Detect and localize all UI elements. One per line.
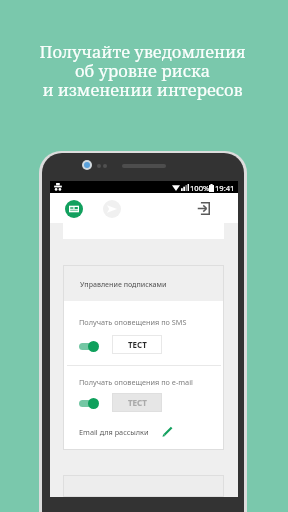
staticText: Получать оповещения по SMS — [79, 317, 187, 327]
button[interactable]: Toggle notifications — [79, 397, 101, 409]
button[interactable]: Exit — [192, 197, 215, 220]
staticText: ТЕСТ — [128, 339, 147, 350]
button[interactable]: ТЕСТ — [112, 393, 162, 412]
button[interactable]: Toggle notifications — [79, 340, 101, 352]
button[interactable]: Edit email — [161, 425, 174, 438]
staticText: Email для рассылки — [79, 427, 149, 437]
staticText: 19:41 — [215, 183, 235, 193]
button[interactable]: ТЕСТ — [112, 335, 162, 354]
staticText: ТЕСТ — [128, 397, 147, 408]
staticText: Управление подписками — [80, 280, 167, 290]
button[interactable]: Send message — [103, 200, 121, 218]
button[interactable]: News feed — [65, 200, 83, 218]
staticText: 100% — [190, 183, 210, 193]
staticText: Получать оповещения по e-mail — [79, 377, 193, 387]
staticText: Получайте уведомления об уровне риска и … — [39, 40, 246, 101]
